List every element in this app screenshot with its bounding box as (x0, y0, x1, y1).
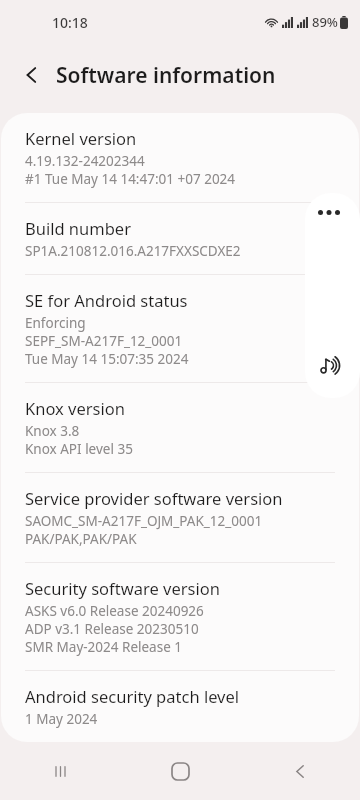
staticText: ADP v3.1 Release 20230510 (25, 620, 199, 638)
staticText: SEPF_SM-A217F_12_0001 (25, 332, 183, 350)
staticText: Tue May 14 15:07:35 2024 (25, 350, 189, 368)
staticText: SAOMC_SM-A217F_OJM_PAK_12_0001 (25, 512, 263, 530)
button[interactable]: Back (240, 742, 360, 800)
staticText: 89% (312, 13, 338, 31)
staticText: PAK/PAK,PAK/PAK (25, 530, 137, 548)
staticText: SP1A.210812.016.A217FXXSCDXE2 (25, 242, 241, 260)
staticText: Enforcing (25, 314, 86, 332)
staticText: 4.19.132-24202344 (25, 152, 145, 170)
button[interactable]: Home (120, 742, 240, 800)
button[interactable]: Android security patch level (1, 671, 359, 742)
button[interactable]: Security software version (1, 563, 359, 671)
button[interactable]: SE for Android status (1, 275, 359, 383)
staticText: 1 May 2024 (25, 710, 98, 728)
button[interactable]: Build number (1, 203, 359, 275)
staticText: Software information (56, 61, 276, 90)
staticText: Knox 3.8 (25, 422, 80, 440)
staticText: Knox API level 35 (25, 440, 133, 458)
button[interactable]: Edge panel (305, 193, 360, 398)
staticText: Android security patch level (25, 685, 240, 707)
button[interactable]: Kernel version (1, 113, 359, 203)
staticText: SMR May-2024 Release 1 (25, 638, 183, 656)
staticText: ASKS v6.0 Release 20240926 (25, 602, 204, 620)
staticText: Security software version (25, 577, 220, 599)
staticText: Service provider software version (25, 487, 283, 509)
staticText: Knox version (25, 397, 125, 419)
staticText: #1 Tue May 14 14:47:01 +07 2024 (25, 170, 236, 188)
staticText: SE for Android status (25, 289, 188, 311)
button[interactable]: Knox version (1, 383, 359, 473)
staticText: Build number (25, 217, 131, 239)
button[interactable]: Recents (0, 742, 120, 800)
staticText: Kernel version (25, 127, 137, 149)
staticText: 10:18 (52, 13, 88, 32)
button[interactable]: Service provider software version (1, 473, 359, 563)
button[interactable]: Back (12, 55, 52, 95)
